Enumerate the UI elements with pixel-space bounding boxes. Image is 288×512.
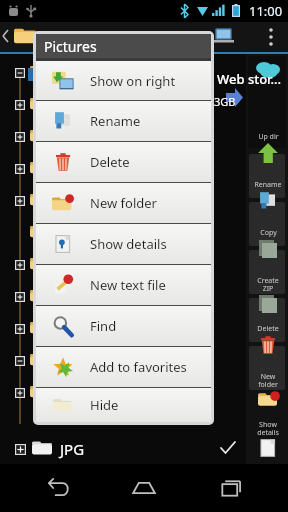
staticText: 11:00 <box>249 2 283 20</box>
staticText: Up dir <box>258 132 279 142</box>
button[interactable]: Show details <box>249 420 287 464</box>
staticText: Add to favorites <box>90 358 187 376</box>
staticText: Delete <box>90 153 130 171</box>
button[interactable]: Create ZIP <box>249 276 287 324</box>
button[interactable]: Delete <box>36 142 211 182</box>
button[interactable]: Show details <box>36 224 211 264</box>
staticText: Rename <box>90 112 141 130</box>
button[interactable]: Show on right <box>36 61 211 100</box>
staticText: New folder <box>90 194 157 212</box>
staticText: Show details <box>90 235 167 253</box>
staticText: New folder <box>258 372 278 389</box>
button[interactable]: Add to favorites <box>36 347 211 387</box>
staticText: Web stor… <box>217 70 282 88</box>
button[interactable]: Copy <box>249 228 287 276</box>
staticText: Pictures <box>44 37 97 56</box>
button[interactable]: Rename <box>249 180 287 228</box>
staticText: Copy <box>260 228 277 238</box>
button[interactable]: Hide <box>36 388 211 422</box>
button[interactable]: New folder <box>36 183 211 223</box>
button[interactable]: Find <box>36 306 211 346</box>
staticText: Show on right <box>90 72 176 90</box>
button[interactable]: Up dir <box>249 132 287 180</box>
staticText: Hide <box>90 396 119 414</box>
staticText: Find <box>90 317 117 335</box>
button[interactable]: JPG <box>0 434 246 464</box>
staticText: Rename <box>254 180 282 190</box>
staticText: 3GB <box>214 94 236 109</box>
button[interactable]: New folder <box>249 372 287 420</box>
button[interactable]: Rename <box>36 101 211 141</box>
button[interactable]: Back <box>30 464 86 512</box>
button[interactable]: Recent apps <box>202 464 258 512</box>
button[interactable]: Delete <box>249 324 287 372</box>
staticText: Create ZIP <box>257 276 279 293</box>
staticText: Show details <box>257 420 279 437</box>
button[interactable]: New text file <box>36 265 211 305</box>
staticText: New text file <box>90 276 166 294</box>
button[interactable]: Home <box>116 464 172 512</box>
staticText: Delete <box>257 324 279 334</box>
staticText: JPG <box>60 439 85 459</box>
